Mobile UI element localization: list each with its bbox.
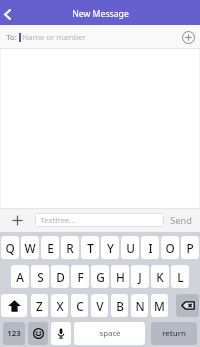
staticText: A <box>16 269 24 285</box>
button[interactable]: I <box>141 236 159 259</box>
staticText: U <box>126 240 135 256</box>
staticText: T <box>87 240 94 256</box>
button[interactable]: M <box>151 294 168 317</box>
button[interactable]: R <box>61 236 79 259</box>
staticText: Q <box>5 240 15 256</box>
staticText: C <box>76 298 84 314</box>
button[interactable]: Add contact <box>176 25 200 49</box>
staticText: return <box>162 328 186 339</box>
staticText: space <box>99 328 121 339</box>
staticText: M <box>154 298 165 314</box>
button[interactable]: S <box>31 265 49 288</box>
staticText: 123 <box>7 328 21 339</box>
staticText: J <box>138 269 142 285</box>
staticText: Z <box>36 298 43 314</box>
button[interactable]: Send <box>170 208 192 232</box>
button[interactable]: Shift <box>1 294 27 317</box>
button[interactable]: E <box>41 236 59 259</box>
button[interactable]: Add attachment <box>0 208 35 232</box>
button[interactable]: N <box>131 294 148 317</box>
button[interactable]: 123 <box>3 322 25 345</box>
button[interactable]: O <box>161 236 179 259</box>
staticText: L <box>177 269 184 285</box>
staticText: I <box>148 240 153 256</box>
button[interactable]: C <box>71 294 88 317</box>
button[interactable]: U <box>121 236 139 259</box>
staticText: W <box>24 240 36 256</box>
button[interactable]: G <box>91 265 109 288</box>
staticText: K <box>156 269 164 285</box>
button[interactable]: H <box>111 265 129 288</box>
button[interactable]: Q <box>1 236 19 259</box>
staticText: Name or number <box>22 32 86 43</box>
staticText: F <box>77 269 84 285</box>
button[interactable]: return <box>151 322 197 345</box>
button[interactable]: F <box>71 265 89 288</box>
staticText: P <box>186 240 194 256</box>
staticText: Send <box>170 214 192 227</box>
staticText: V <box>96 298 104 314</box>
button[interactable]: T <box>81 236 99 259</box>
button[interactable]: X <box>51 294 68 317</box>
button[interactable]: Y <box>101 236 119 259</box>
staticText: Y <box>107 240 114 256</box>
button[interactable]: A <box>11 265 29 288</box>
staticText: S <box>37 269 44 285</box>
button[interactable]: L <box>171 265 189 288</box>
staticText: E <box>47 240 54 256</box>
button[interactable]: space <box>74 322 145 345</box>
staticText: X <box>56 298 64 314</box>
button[interactable]: Z <box>31 294 48 317</box>
staticText: To: <box>6 32 17 43</box>
button[interactable]: Textfree... <box>35 213 164 227</box>
button[interactable]: W <box>21 236 39 259</box>
staticText: Textfree... <box>40 215 76 225</box>
button[interactable]: Backspace <box>176 294 199 317</box>
staticText: O <box>165 240 175 256</box>
staticText: D <box>56 269 65 285</box>
button[interactable]: K <box>151 265 169 288</box>
staticText: R <box>66 240 74 256</box>
staticText: New Message <box>72 8 129 20</box>
staticText: B <box>116 298 124 314</box>
staticText: H <box>116 269 125 285</box>
button[interactable]: B <box>111 294 128 317</box>
button[interactable]: Back <box>0 0 20 25</box>
staticText: N <box>135 298 145 314</box>
button[interactable]: P <box>181 236 199 259</box>
button[interactable]: J <box>131 265 149 288</box>
button[interactable]: V <box>91 294 108 317</box>
button[interactable]: D <box>51 265 69 288</box>
button[interactable]: Emoji <box>28 322 48 345</box>
button[interactable]: Voice input <box>51 322 71 345</box>
staticText: G <box>96 269 105 285</box>
